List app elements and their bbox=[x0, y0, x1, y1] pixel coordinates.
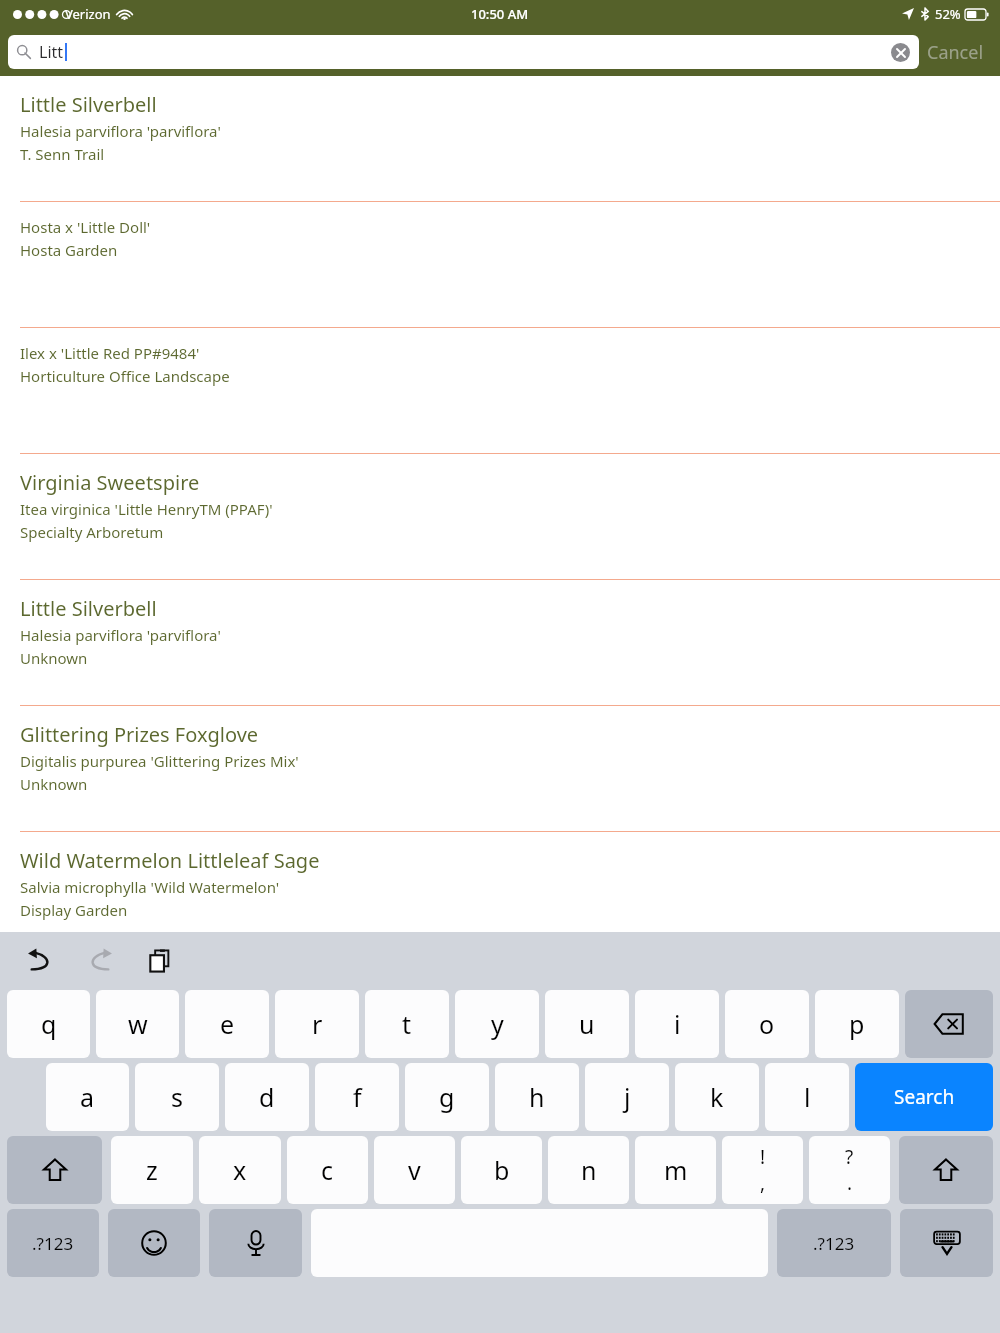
button[interactable]: Backspace bbox=[905, 990, 993, 1058]
staticText: e bbox=[220, 1007, 235, 1041]
staticText: Itea virginica 'Little HenryTM (PPAF)' bbox=[20, 499, 273, 519]
staticText: i bbox=[674, 1007, 681, 1041]
button[interactable]: Little Silverbell bbox=[0, 76, 1000, 201]
button[interactable]: j bbox=[585, 1063, 669, 1131]
staticText: k bbox=[710, 1080, 724, 1114]
button[interactable]: Shift bbox=[899, 1136, 993, 1204]
button[interactable]: z bbox=[111, 1136, 193, 1204]
staticText: Verizon bbox=[65, 5, 111, 23]
staticText: 52% bbox=[935, 5, 961, 23]
button[interactable]: y bbox=[455, 990, 539, 1058]
button[interactable]: Shift bbox=[7, 1136, 102, 1204]
button[interactable]: Little Silverbell bbox=[0, 580, 1000, 705]
button[interactable]: v bbox=[374, 1136, 455, 1204]
staticText: Salvia microphylla 'Wild Watermelon' bbox=[20, 877, 280, 897]
staticText: . bbox=[847, 1170, 853, 1196]
staticText: Specialty Arboretum bbox=[20, 522, 164, 542]
staticText: Hosta Garden bbox=[20, 240, 118, 260]
staticText: j bbox=[624, 1080, 631, 1114]
staticText: t bbox=[402, 1007, 412, 1041]
button[interactable]: ? bbox=[809, 1136, 890, 1204]
staticText: Search bbox=[894, 1084, 955, 1110]
staticText: 10:50 AM bbox=[471, 5, 529, 23]
staticText: m bbox=[664, 1153, 688, 1187]
button[interactable]: .?123 bbox=[7, 1209, 99, 1277]
button[interactable]: w bbox=[96, 990, 179, 1058]
staticText: z bbox=[146, 1153, 158, 1187]
button[interactable]: u bbox=[545, 990, 629, 1058]
staticText: v bbox=[408, 1153, 421, 1187]
staticText: s bbox=[171, 1080, 183, 1114]
button[interactable]: m bbox=[635, 1136, 716, 1204]
button[interactable]: Hide keyboard bbox=[900, 1209, 993, 1277]
button[interactable]: x bbox=[199, 1136, 281, 1204]
button[interactable]: h bbox=[495, 1063, 579, 1131]
button[interactable]: n bbox=[548, 1136, 629, 1204]
staticText: a bbox=[80, 1080, 95, 1114]
staticText: Litt bbox=[39, 41, 64, 63]
staticText: Ilex x 'Little Red PP#9484' bbox=[20, 343, 200, 363]
button[interactable]: d bbox=[225, 1063, 309, 1131]
button[interactable]: c bbox=[287, 1136, 368, 1204]
button[interactable]: Paste bbox=[138, 939, 182, 983]
button[interactable]: Dictate bbox=[209, 1209, 302, 1277]
button[interactable]: i bbox=[635, 990, 719, 1058]
staticText: b bbox=[494, 1153, 510, 1187]
staticText: Unknown bbox=[20, 648, 88, 668]
staticText: x bbox=[233, 1153, 247, 1187]
button[interactable]: f bbox=[315, 1063, 399, 1131]
staticText: Hosta x 'Little Doll' bbox=[20, 217, 151, 237]
button[interactable]: Wild Watermelon Littleleaf Sage bbox=[0, 832, 1000, 932]
staticText: n bbox=[581, 1153, 597, 1187]
button[interactable]: Clear text bbox=[891, 43, 910, 62]
staticText: o bbox=[759, 1007, 775, 1041]
staticText: w bbox=[128, 1007, 148, 1041]
staticText: Glittering Prizes Foxglove bbox=[20, 721, 259, 748]
button[interactable]: Search bbox=[855, 1063, 993, 1131]
button[interactable]: e bbox=[185, 990, 269, 1058]
staticText: .?123 bbox=[32, 1232, 74, 1255]
button[interactable]: Glittering Prizes Foxglove bbox=[0, 706, 1000, 831]
button[interactable]: t bbox=[365, 990, 449, 1058]
staticText: g bbox=[439, 1080, 455, 1114]
staticText: .?123 bbox=[813, 1232, 855, 1255]
staticText: Cancel bbox=[927, 40, 984, 65]
button[interactable]: g bbox=[405, 1063, 489, 1131]
staticText: r bbox=[312, 1007, 323, 1041]
button[interactable]: .?123 bbox=[777, 1209, 891, 1277]
staticText: Halesia parviflora 'parviflora' bbox=[20, 625, 221, 645]
staticText: q bbox=[41, 1007, 57, 1041]
staticText: Horticulture Office Landscape bbox=[20, 366, 230, 386]
button[interactable]: ! bbox=[722, 1136, 803, 1204]
button[interactable]: q bbox=[7, 990, 90, 1058]
staticText: Little Silverbell bbox=[20, 595, 157, 622]
button[interactable]: Emoji bbox=[108, 1209, 200, 1277]
button[interactable]: Ilex x 'Little Red PP#9484' bbox=[0, 328, 1000, 453]
button[interactable]: Redo bbox=[78, 939, 122, 983]
staticText: ? bbox=[845, 1144, 854, 1170]
button[interactable]: Hosta x 'Little Doll' bbox=[0, 202, 1000, 327]
button[interactable]: r bbox=[275, 990, 359, 1058]
staticText: d bbox=[259, 1080, 275, 1114]
button[interactable]: k bbox=[675, 1063, 759, 1131]
button[interactable]: Virginia Sweetspire bbox=[0, 454, 1000, 579]
staticText: Unknown bbox=[20, 774, 88, 794]
button[interactable]: a bbox=[46, 1063, 129, 1131]
button[interactable]: Undo bbox=[18, 939, 62, 983]
staticText: Little Silverbell bbox=[20, 91, 157, 118]
staticText: Virginia Sweetspire bbox=[20, 469, 200, 496]
staticText: Display Garden bbox=[20, 900, 128, 920]
button[interactable]: p bbox=[815, 990, 899, 1058]
button[interactable]: o bbox=[725, 990, 809, 1058]
staticText: ! bbox=[760, 1144, 766, 1170]
button[interactable]: Cancel bbox=[919, 34, 992, 71]
staticText: p bbox=[849, 1007, 865, 1041]
button[interactable]: b bbox=[461, 1136, 542, 1204]
staticText: Digitalis purpurea 'Glittering Prizes Mi… bbox=[20, 751, 299, 771]
button[interactable]: s bbox=[135, 1063, 219, 1131]
staticText: c bbox=[321, 1153, 334, 1187]
staticText: Halesia parviflora 'parviflora' bbox=[20, 121, 221, 141]
button[interactable]: l bbox=[765, 1063, 849, 1131]
button[interactable]: Litt bbox=[8, 35, 919, 69]
